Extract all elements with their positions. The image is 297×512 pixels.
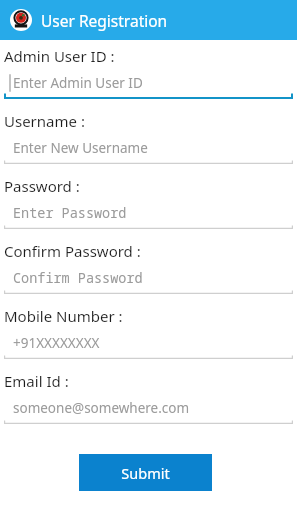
staticText: Email Id : — [4, 371, 69, 391]
button[interactable]: Enter Password — [4, 203, 293, 223]
button[interactable]: +91XXXXXXXX — [4, 333, 293, 353]
button[interactable]: someone@somewhere.com — [4, 398, 293, 418]
staticText: Confirm Password : — [4, 241, 141, 261]
staticText: User Registration — [41, 10, 168, 31]
staticText: +91XXXXXXXX — [13, 334, 100, 352]
staticText: Enter Password — [13, 204, 127, 222]
staticText: Password : — [4, 176, 80, 196]
staticText: Admin User ID : — [4, 46, 115, 66]
button[interactable]: Enter Admin User ID — [4, 73, 293, 93]
other: App logo — [10, 9, 32, 31]
button[interactable]: Submit — [79, 454, 212, 491]
staticText: Enter Admin User ID — [13, 74, 143, 92]
staticText: Enter New Username — [13, 139, 148, 157]
staticText: Username : — [4, 111, 85, 131]
button[interactable]: Confirm Password — [4, 268, 293, 288]
staticText: Mobile Number : — [4, 306, 123, 326]
button[interactable]: Enter New Username — [4, 138, 293, 158]
staticText: someone@somewhere.com — [13, 399, 190, 417]
staticText: Submit — [121, 463, 170, 483]
staticText: Confirm Password — [13, 269, 143, 287]
